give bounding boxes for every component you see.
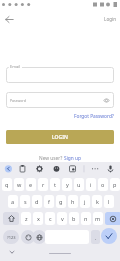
staticText: q (5, 181, 9, 188)
button[interactable]: t (50, 178, 60, 191)
button[interactable]: v (57, 212, 67, 225)
button[interactable]: z (21, 212, 31, 225)
button[interactable]: g (56, 195, 66, 208)
button[interactable]: d (32, 195, 42, 208)
button[interactable]: m (93, 212, 103, 225)
button[interactable]: Enter (101, 228, 117, 244)
staticText: z (25, 215, 28, 222)
staticText: New user? (39, 155, 64, 162)
staticText: y (66, 181, 69, 188)
staticText: a (11, 198, 15, 205)
button[interactable]: f (44, 195, 54, 208)
staticText: Password (10, 98, 26, 103)
button[interactable]: ?123 (3, 230, 19, 244)
button[interactable]: Emoji (21, 230, 35, 244)
button[interactable]: Show password (102, 96, 111, 105)
staticText: e (29, 181, 33, 188)
button[interactable]: k (92, 195, 102, 208)
staticText: p (113, 181, 117, 188)
staticText: w (17, 181, 22, 188)
staticText: d (35, 198, 39, 205)
staticText: k (96, 198, 99, 205)
button[interactable]: u (74, 178, 84, 191)
button[interactable]: l (104, 195, 114, 208)
staticText: m (95, 215, 101, 222)
staticText: s (24, 198, 27, 205)
button[interactable]: Login (104, 16, 117, 22)
staticText: h (71, 198, 75, 205)
button[interactable]: h (68, 195, 78, 208)
button[interactable]: Shift (3, 212, 19, 225)
staticText: t (54, 181, 56, 188)
button[interactable]: r (38, 178, 48, 191)
button[interactable]: Forgot Password? (74, 113, 114, 120)
button[interactable]: w (14, 178, 24, 191)
staticText: Email (10, 64, 21, 69)
staticText: i (90, 181, 92, 188)
button[interactable]: j (80, 195, 90, 208)
staticText: r (42, 181, 45, 188)
staticText: o (101, 181, 105, 188)
button[interactable]: Hide keyboard (6, 246, 17, 257)
staticText: u (77, 181, 81, 188)
staticText: Login (104, 16, 117, 22)
button[interactable]: . (91, 230, 100, 244)
button[interactable]: e (26, 178, 36, 191)
button[interactable]: s (20, 195, 30, 208)
button[interactable]: a (8, 195, 18, 208)
staticText: b (72, 215, 76, 222)
staticText: . (95, 234, 97, 241)
button[interactable]: Backspace (105, 212, 120, 225)
staticText: l (108, 198, 110, 205)
button[interactable]: y (62, 178, 72, 191)
button[interactable]: p (110, 178, 120, 191)
button[interactable]: Change language (32, 230, 46, 244)
staticText: v (61, 215, 64, 222)
staticText: Sign up (64, 155, 81, 162)
button[interactable]: n (81, 212, 91, 225)
staticText: f (48, 198, 50, 205)
staticText: x (37, 215, 40, 222)
button[interactable]: LOGIN (6, 130, 114, 144)
staticText: n (84, 215, 88, 222)
staticText: Forgot Password? (74, 113, 114, 120)
button[interactable]: c (45, 212, 55, 225)
button[interactable]: b (69, 212, 79, 225)
button[interactable]: i (86, 178, 96, 191)
button[interactable]: q (2, 178, 12, 191)
button[interactable]: o (98, 178, 108, 191)
button[interactable]: Back (1, 11, 17, 27)
staticText: j (84, 198, 86, 205)
button[interactable]: x (33, 212, 43, 225)
staticText: ?123 (7, 235, 16, 240)
staticText: LOGIN (52, 134, 68, 141)
button[interactable]: Sign up (64, 155, 81, 162)
staticText: g (59, 198, 63, 205)
staticText: c (49, 215, 52, 222)
